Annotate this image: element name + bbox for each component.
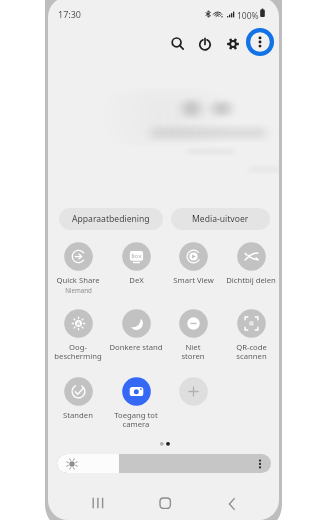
staticText: Media-uitvoer (192, 213, 249, 225)
button[interactable]: Media-uitvoer (171, 208, 270, 230)
staticText: DeX (129, 275, 144, 285)
button[interactable]: Back (218, 490, 246, 518)
button[interactable]: Power off (192, 31, 218, 57)
button[interactable]: Brightness settings (57, 454, 271, 473)
button[interactable]: Oog- bescherming (49, 309, 107, 362)
button[interactable]: Settings (220, 31, 246, 57)
button[interactable]: Smart View (164, 242, 222, 285)
button[interactable]: QR-code scannen (222, 309, 279, 362)
button[interactable]: Home (151, 489, 179, 517)
staticText: Apparaatbediening (72, 213, 150, 225)
button[interactable]: Apparaatbediening (59, 208, 163, 230)
button[interactable]: Donkere stand (107, 309, 165, 352)
button[interactable]: Standen (49, 377, 107, 420)
button[interactable]: Recents (84, 489, 112, 517)
staticText: Niemand (65, 286, 92, 294)
button[interactable]: DeX (107, 242, 165, 285)
button[interactable]: Search (164, 30, 190, 56)
button[interactable]: Toegang tot camera (107, 377, 165, 430)
staticText: 17:30 (58, 8, 82, 20)
button[interactable]: Quick Share (49, 242, 107, 294)
button[interactable]: Dichtbij delen (222, 242, 279, 285)
staticText: Dichtbij delen (226, 275, 276, 285)
staticText: 100% (237, 10, 259, 22)
staticText: Donkere stand (109, 342, 163, 352)
button[interactable]: Niet storen (164, 309, 222, 362)
staticText: Niet storen (181, 342, 205, 362)
staticText: QR-code scannen (236, 342, 267, 362)
button[interactable]: Brightness settings (250, 454, 270, 473)
staticText: Quick Share (56, 275, 100, 285)
staticText: Smart View (173, 275, 214, 285)
staticText: Oog- bescherming (54, 342, 102, 362)
staticText: Toegang tot camera (114, 410, 158, 430)
button[interactable]: More options (245, 27, 275, 57)
staticText: Standen (63, 410, 93, 420)
button[interactable] (164, 377, 222, 410)
